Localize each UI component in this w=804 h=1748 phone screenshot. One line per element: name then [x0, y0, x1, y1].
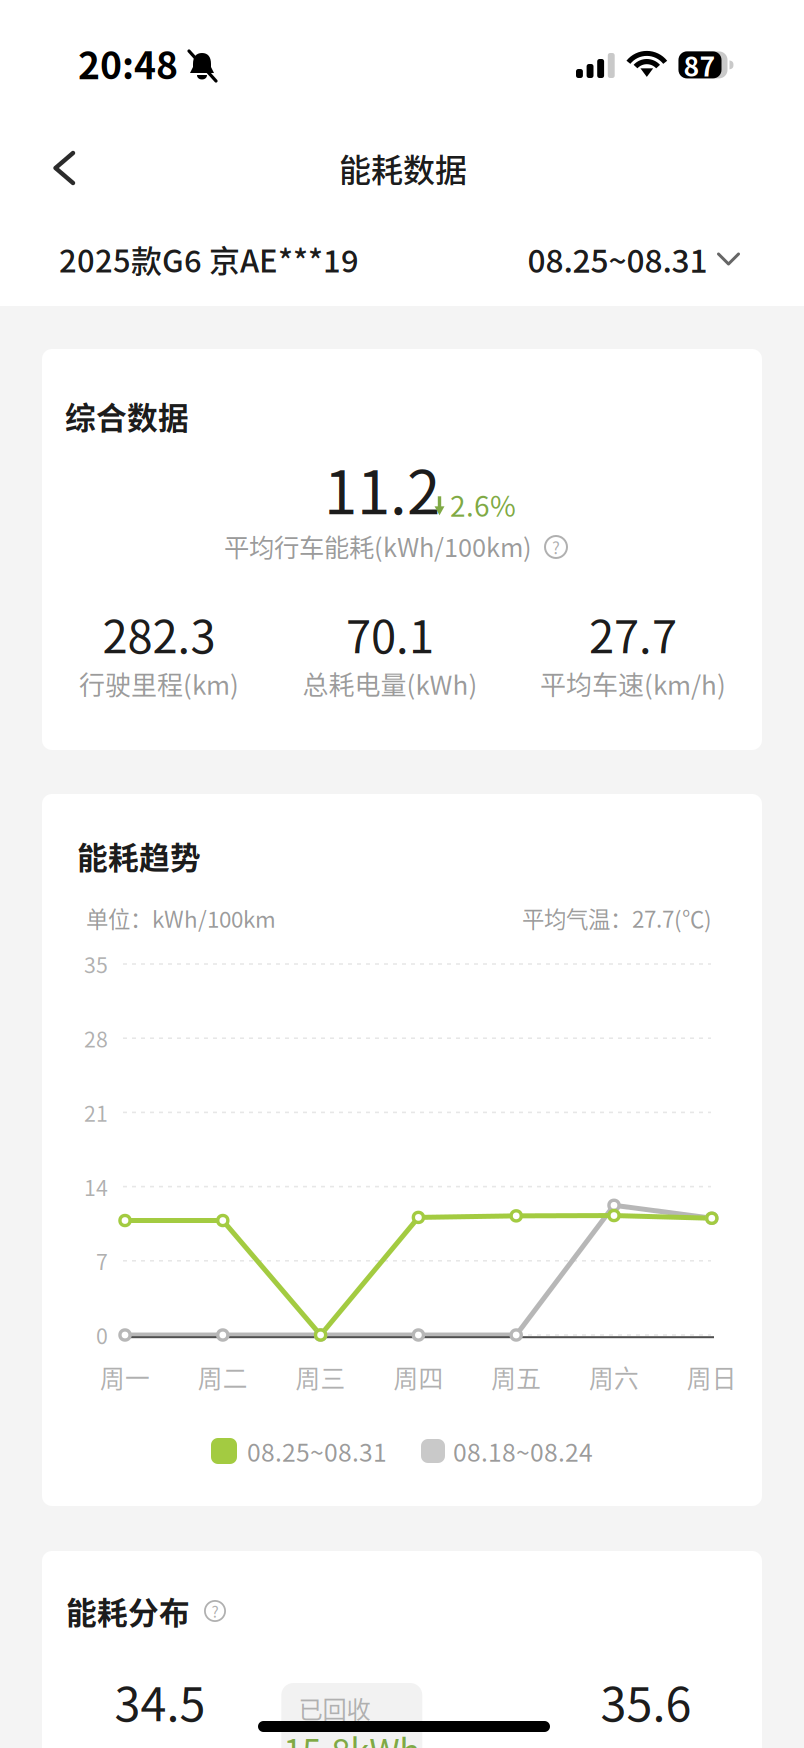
button[interactable]: 返回 [36, 136, 100, 200]
staticText: 周一 [100, 1359, 150, 1395]
staticText: 平均气温：27.7(℃) [522, 902, 712, 934]
staticText: 能耗数据 [339, 145, 467, 191]
staticText: 28 [84, 1023, 108, 1054]
staticText: 综合数据 [65, 394, 189, 438]
staticText: 282.3 [102, 601, 215, 666]
staticText: 周五 [491, 1359, 541, 1395]
staticText: 周三 [296, 1359, 346, 1395]
staticText: 08.25~08.31 [247, 1433, 387, 1469]
staticText: 14 [84, 1171, 108, 1202]
staticText: 平均车速(km/h) [540, 665, 726, 702]
staticText: 2.6% [450, 484, 516, 525]
staticText: 周六 [589, 1359, 639, 1395]
staticText: 能耗趋势 [77, 834, 201, 878]
staticText: 周四 [393, 1359, 443, 1395]
staticText: 平均行车能耗(kWh/100km) [224, 528, 532, 564]
staticText: 08.18~08.24 [453, 1433, 593, 1469]
staticText: 周日 [687, 1359, 737, 1395]
staticText: 2025款G6 京AE***19 [59, 237, 359, 281]
staticText: ? [211, 1600, 218, 1622]
staticText: 70.1 [346, 601, 434, 666]
staticText: 34.5 [114, 1667, 205, 1735]
staticText: 35.6 [600, 1667, 691, 1735]
staticText: 总耗电量(kWh) [302, 665, 477, 702]
staticText: 已回收 [298, 1690, 370, 1725]
staticText: 21 [84, 1097, 108, 1128]
staticText: ? [552, 535, 560, 559]
staticText: 20:48 [78, 36, 178, 90]
staticText: 08.25~08.31 [527, 236, 707, 282]
staticText: 35 [84, 949, 108, 979]
staticText: 0 [96, 1320, 108, 1350]
staticText: 87 [683, 46, 715, 84]
staticText: 7 [96, 1245, 108, 1276]
staticText: 15.8kWh [283, 1724, 420, 1748]
staticText: 27.7 [589, 601, 677, 666]
button[interactable]: 08.25~08.31 [527, 224, 740, 294]
staticText: 单位：kWh/100km [86, 902, 276, 934]
staticText: 周二 [198, 1359, 248, 1395]
staticText: 行驶里程(km) [79, 665, 239, 702]
staticText: 能耗分布 [66, 1589, 190, 1633]
staticText: 11.2 [324, 445, 440, 531]
